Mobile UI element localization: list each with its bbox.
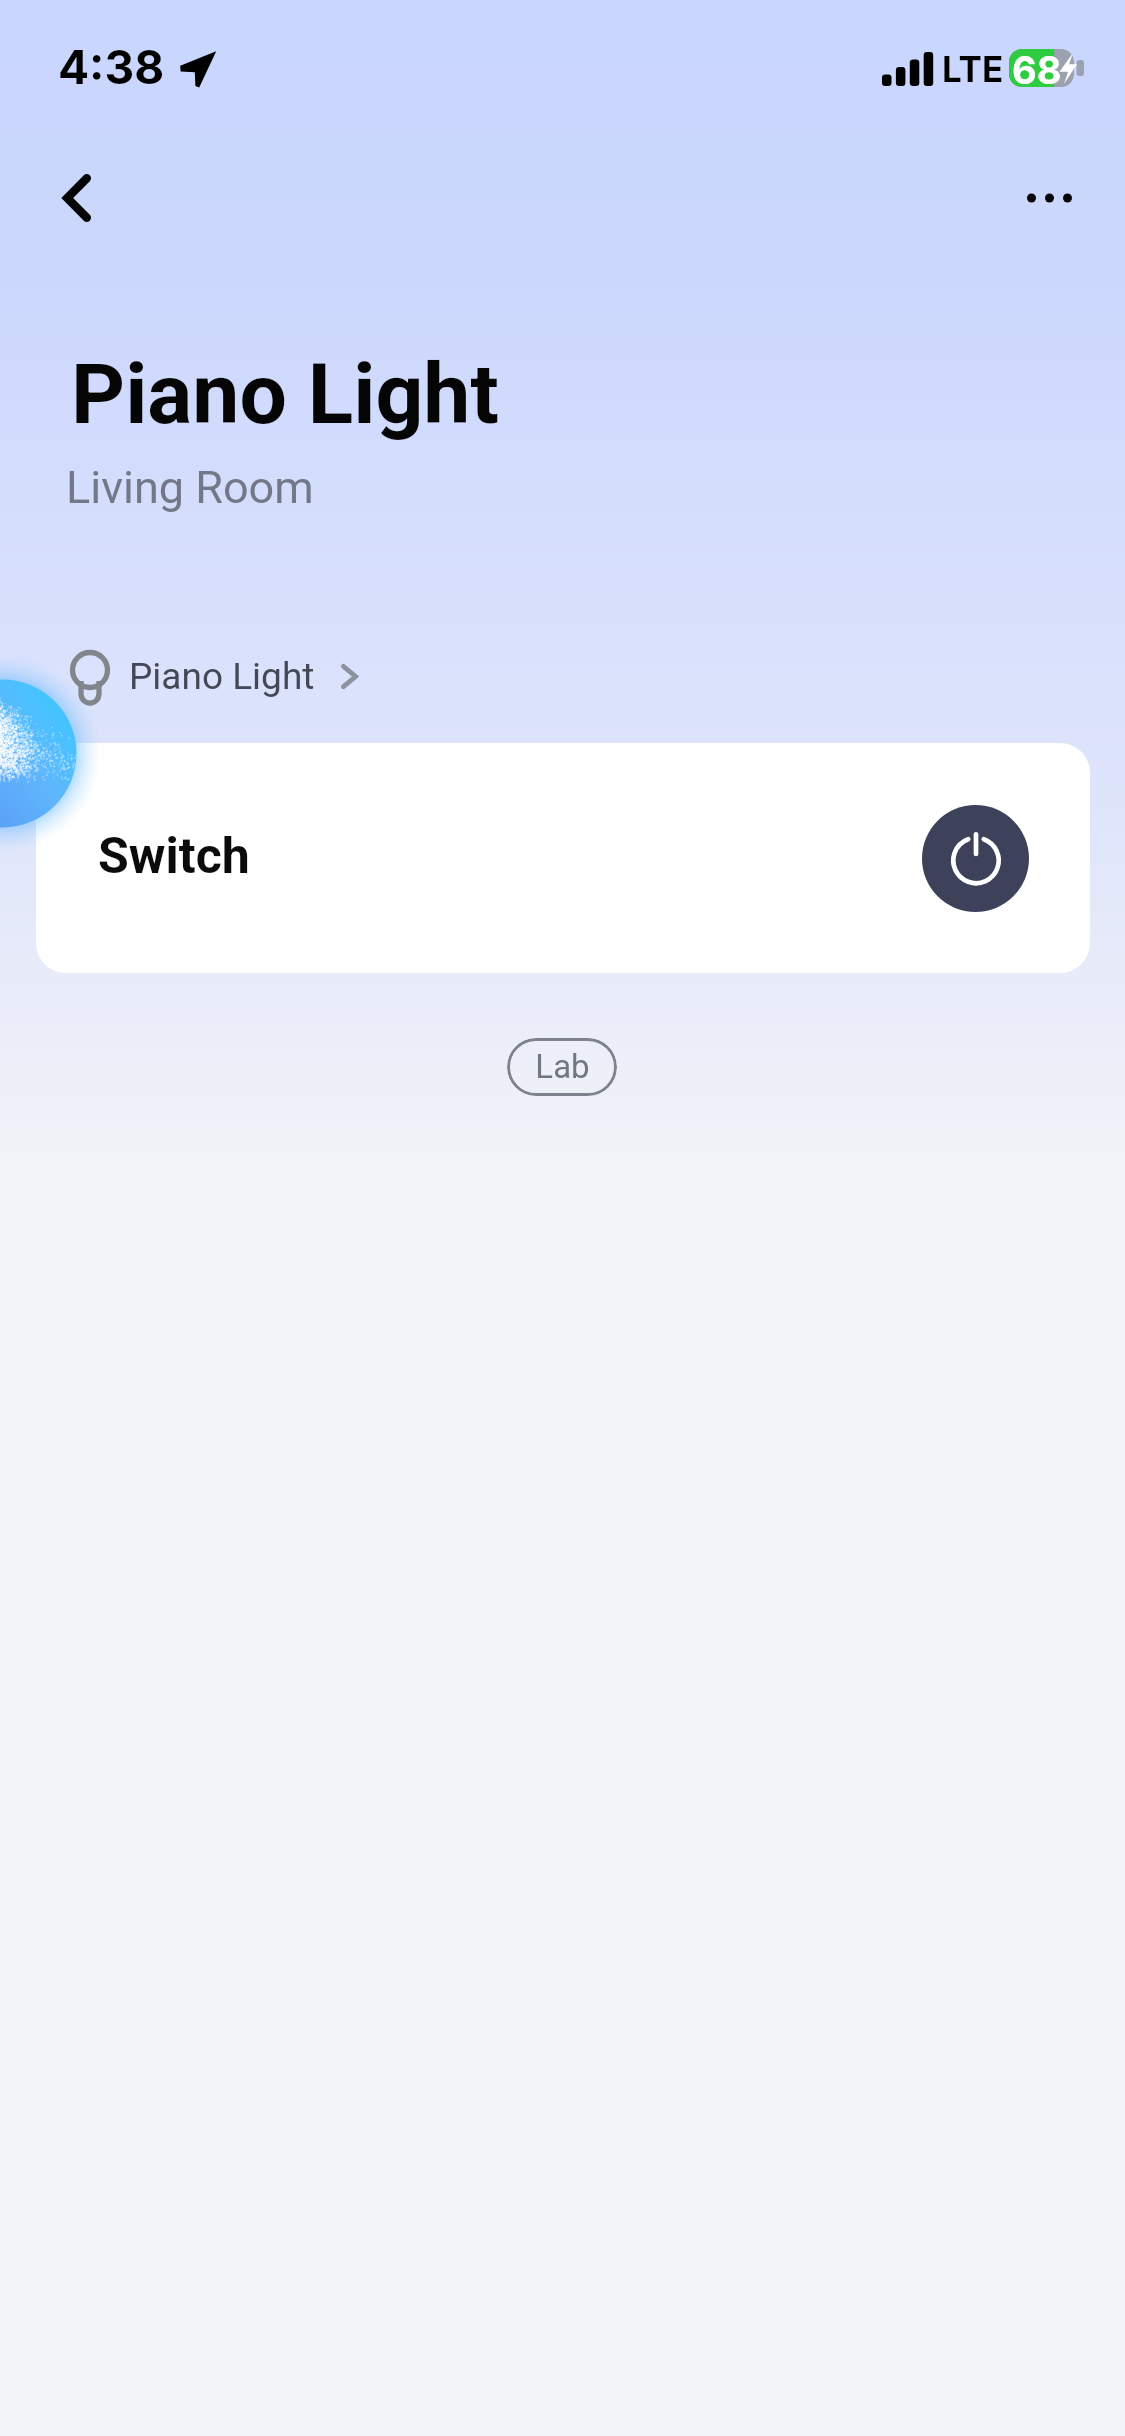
staticText: Piano Light xyxy=(71,345,499,443)
button[interactable]: Back xyxy=(42,163,111,232)
staticText: 4:38 xyxy=(58,39,165,95)
button[interactable]: Power xyxy=(922,805,1029,912)
staticText: Lab xyxy=(535,1047,590,1086)
staticText: 68 xyxy=(1012,47,1062,85)
button[interactable]: More options xyxy=(1015,163,1084,232)
staticText: Living Room xyxy=(66,461,314,514)
staticText: Switch xyxy=(98,827,250,886)
staticText: Piano Light xyxy=(129,655,315,698)
button[interactable]: Lab xyxy=(507,1038,617,1096)
button[interactable]: Switch xyxy=(36,743,1090,973)
staticText: LTE xyxy=(942,48,1004,90)
button[interactable]: Piano Light xyxy=(70,641,358,711)
